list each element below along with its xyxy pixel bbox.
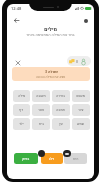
staticText: בדוק (22, 157, 30, 161)
staticText: מילה (18, 94, 26, 98)
staticText: שמש (77, 122, 85, 126)
button[interactable]: דלג (41, 153, 63, 164)
button[interactable]: Close (13, 58, 22, 67)
staticText: עץ (59, 122, 63, 126)
button[interactable]: Hint (63, 150, 71, 157)
staticText: רמז (73, 157, 79, 161)
button[interactable]: תשובה (32, 90, 50, 102)
button[interactable]: Back (12, 16, 21, 25)
button[interactable]: ילד (13, 118, 30, 130)
button[interactable]: משפט (72, 90, 90, 102)
staticText: 12:48 (11, 6, 22, 11)
staticText: דף (19, 108, 24, 112)
button[interactable]: דף (13, 104, 30, 116)
button[interactable]: רמז (64, 153, 87, 164)
button[interactable]: תמונה (52, 104, 70, 116)
button[interactable]: Settings (81, 16, 90, 25)
button[interactable]: בחירה (52, 90, 70, 102)
button[interactable]: בית (32, 118, 50, 130)
button[interactable]: Play audio (38, 150, 45, 157)
staticText: בחירה (56, 94, 66, 98)
staticText: תמונה (56, 108, 66, 112)
staticText: ילד (19, 122, 24, 126)
staticText: משפט (76, 94, 86, 98)
staticText: בית (39, 122, 44, 126)
staticText: שאלה 3 (45, 69, 58, 74)
staticText: תשובה (36, 94, 46, 98)
button[interactable]: בדוק (14, 153, 38, 164)
staticText: ספר (38, 108, 45, 112)
staticText: 8 (76, 59, 79, 64)
staticText: ציור (78, 108, 84, 112)
staticText: בחר את המילה המתאימה ביותר (26, 32, 75, 37)
button[interactable]: ציור (72, 104, 90, 116)
button[interactable]: עץ (52, 118, 70, 130)
button[interactable]: 8 (67, 56, 91, 66)
button[interactable]: מילה (13, 90, 30, 102)
staticText: מילים (44, 26, 58, 32)
staticText: דלג (49, 157, 55, 161)
staticText: מצא את המילה הנכונה (36, 75, 66, 79)
button[interactable]: שמש (72, 118, 90, 130)
button[interactable]: ספר (32, 104, 50, 116)
